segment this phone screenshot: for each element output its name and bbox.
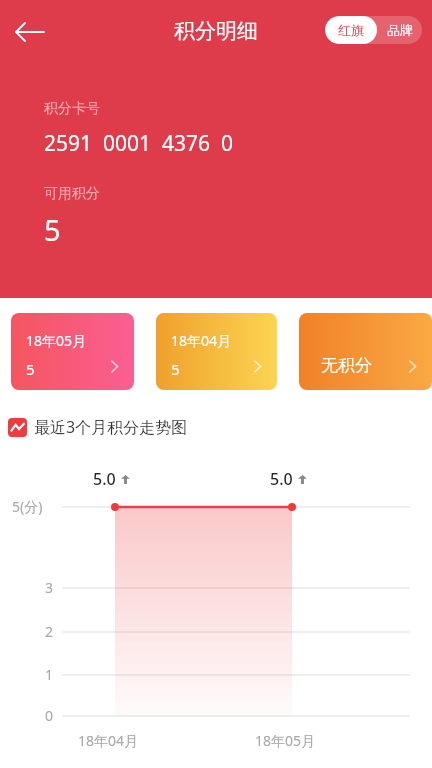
- staticText: 5.0: [270, 468, 293, 490]
- staticText: 18年04月: [78, 731, 139, 750]
- button[interactable]: 红旗: [325, 16, 377, 44]
- staticText: 品牌: [387, 22, 413, 38]
- staticText: 5: [44, 210, 61, 249]
- staticText: 5: [171, 359, 180, 379]
- staticText: 红旗: [338, 22, 364, 38]
- staticText: 1: [45, 665, 54, 684]
- button[interactable]: 18年05月: [11, 313, 134, 390]
- staticText: 0: [45, 706, 54, 725]
- staticText: 可用积分: [44, 185, 100, 203]
- button[interactable]: 最近3个月积分走势图: [8, 414, 188, 440]
- staticText: 18年05月: [26, 331, 87, 350]
- button[interactable]: 18年04月: [156, 313, 277, 390]
- staticText: 2591 0001 4376 0: [44, 129, 233, 158]
- staticText: 3: [45, 578, 54, 597]
- button[interactable]: 无积分: [299, 313, 432, 390]
- staticText: 18年05月: [255, 731, 316, 750]
- staticText: 5(分): [12, 497, 43, 516]
- staticText: 5.0: [93, 468, 116, 490]
- staticText: 积分明细: [0, 18, 432, 44]
- staticText: 积分卡号: [44, 100, 100, 118]
- staticText: 无积分: [321, 355, 372, 376]
- staticText: 2: [45, 622, 54, 641]
- staticText: 5: [26, 359, 35, 379]
- staticText: 18年04月: [171, 331, 232, 350]
- button[interactable]: Back: [6, 8, 54, 56]
- button[interactable]: 品牌: [377, 16, 422, 44]
- staticText: 最近3个月积分走势图: [34, 416, 188, 438]
